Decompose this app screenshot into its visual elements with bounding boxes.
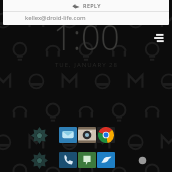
button[interactable]: Twitter bbox=[97, 152, 115, 168]
other: Reply bbox=[72, 2, 80, 10]
button[interactable]: Message app bbox=[59, 127, 77, 143]
staticText: 1:00 bbox=[53, 14, 120, 60]
button[interactable]: Menu bbox=[151, 31, 165, 45]
button[interactable]: Reply bbox=[3, 0, 169, 25]
button[interactable]: Phone bbox=[59, 152, 77, 168]
button[interactable]: Camera app bbox=[78, 127, 96, 143]
staticText: TUE, JANUARY 28 bbox=[55, 61, 118, 69]
staticText: kellex@droid-life.com bbox=[25, 14, 86, 22]
button[interactable]: Chrome bbox=[97, 127, 115, 143]
button[interactable]: Home bbox=[138, 156, 147, 165]
button[interactable]: Messages bbox=[78, 152, 96, 168]
button[interactable]: Reply bbox=[3, 0, 169, 11]
staticText: REPLY bbox=[83, 2, 101, 9]
